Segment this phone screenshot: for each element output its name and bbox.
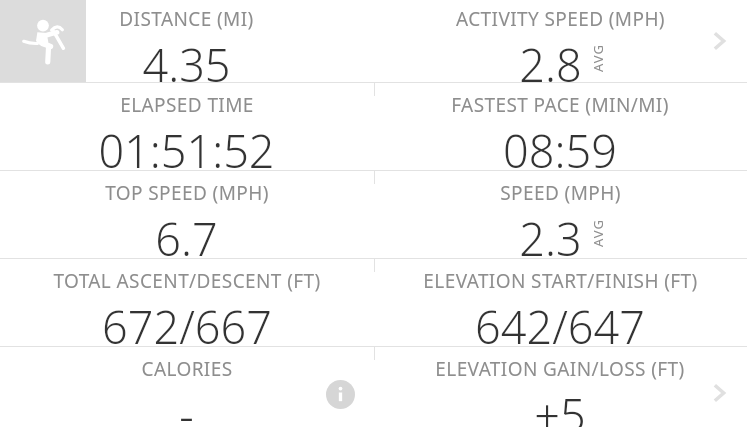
staticText: ELAPSED TIME: [120, 92, 254, 118]
staticText: SPEED (MPH): [500, 180, 621, 206]
staticText: ACTIVITY SPEED (MPH): [456, 6, 665, 32]
button[interactable]: TOTAL ASCENT/DESCENT (FT): [0, 259, 373, 346]
staticText: FASTEST PACE (MIN/MI): [451, 92, 669, 118]
staticText: AVG: [589, 44, 607, 72]
staticText: 6.7: [155, 208, 218, 258]
button[interactable]: ELEVATION START/FINISH (FT): [373, 259, 747, 346]
staticText: 4.35: [142, 34, 231, 82]
staticText: TOTAL ASCENT/DESCENT (FT): [53, 268, 321, 294]
button[interactable]: ELEVATION GAIN/LOSS (FT): [373, 347, 747, 427]
staticText: ELEVATION GAIN/LOSS (FT): [435, 356, 685, 382]
button[interactable]: SPEED (MPH): [373, 171, 747, 258]
staticText: -: [179, 384, 194, 427]
staticText: 08:59: [503, 120, 617, 170]
staticText: 2.8: [519, 34, 582, 82]
button[interactable]: Next: [695, 369, 743, 417]
button[interactable]: Next: [695, 17, 743, 65]
staticText: 2.3: [519, 208, 582, 258]
button[interactable]: TOP SPEED (MPH): [0, 171, 373, 258]
staticText: CALORIES: [141, 356, 233, 382]
button[interactable]: CALORIES: [0, 347, 373, 427]
staticText: +5: [534, 384, 586, 427]
button[interactable]: Information: [320, 374, 360, 414]
staticText: 01:51:52: [98, 120, 275, 170]
button[interactable]: FASTEST PACE (MIN/MI): [373, 83, 747, 170]
staticText: 642/647: [475, 296, 645, 346]
staticText: ELEVATION START/FINISH (FT): [423, 268, 698, 294]
staticText: 672/667: [102, 296, 272, 346]
staticText: AVG: [589, 219, 607, 247]
button[interactable]: DISTANCE (MI): [0, 0, 373, 82]
button[interactable]: ACTIVITY SPEED (MPH): [373, 0, 747, 82]
staticText: TOP SPEED (MPH): [105, 180, 269, 206]
staticText: DISTANCE (MI): [119, 6, 254, 32]
button[interactable]: ELAPSED TIME: [0, 83, 373, 170]
button[interactable]: Activity type: [0, 0, 86, 82]
